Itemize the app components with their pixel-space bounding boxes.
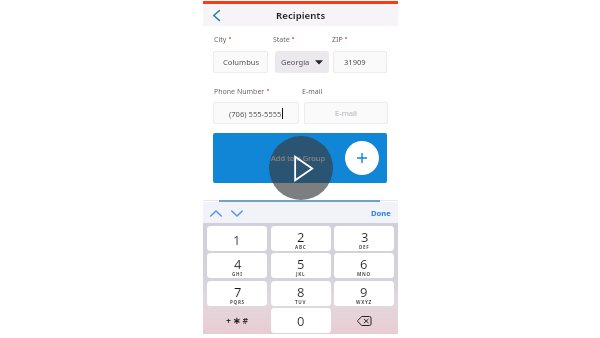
button[interactable]: Done [371, 208, 391, 218]
button[interactable]: 6 [334, 253, 394, 278]
button[interactable]: 31909 [333, 51, 387, 73]
staticText: E-mail [302, 87, 323, 97]
staticText: 0 [297, 312, 305, 330]
staticText: 31909 [344, 57, 366, 67]
button[interactable]: E-mail [304, 102, 388, 124]
staticText: 7 [234, 283, 242, 301]
staticText: Add to a Group [271, 153, 326, 163]
staticText: E-mail [335, 108, 357, 118]
staticText: 8 [297, 283, 305, 301]
staticText: Columbus [223, 57, 260, 67]
staticText: PQRS [230, 299, 245, 305]
button[interactable]: 2 [271, 226, 331, 251]
staticText: JKL [296, 271, 306, 277]
button[interactable]: 5 [271, 253, 331, 278]
staticText: Phone Number [214, 87, 265, 97]
staticText: + ✱ # [226, 315, 249, 327]
staticText: Georgia [281, 57, 310, 67]
button[interactable]: 3 [334, 226, 394, 251]
staticText: 4 [234, 255, 242, 273]
staticText: DEF [359, 244, 370, 250]
staticText: 9 [360, 283, 368, 301]
button[interactable]: + ✱ # [207, 308, 267, 333]
button[interactable]: 7 [207, 281, 267, 306]
staticText: State [273, 35, 290, 45]
staticText: Done [371, 208, 391, 218]
button[interactable]: (706) 555-5555 [213, 102, 299, 124]
button[interactable]: 9 [334, 281, 394, 306]
staticText: ZIP [332, 35, 343, 45]
button[interactable]: 8 [271, 281, 331, 306]
button[interactable]: Add to a Group [213, 133, 387, 183]
staticText: 2 [297, 228, 305, 246]
button[interactable]: Add [345, 141, 379, 175]
button[interactable]: Georgia [275, 51, 329, 73]
button[interactable]: Next field [229, 205, 245, 221]
button[interactable]: 1 [207, 226, 267, 251]
button[interactable]: Play [269, 136, 333, 200]
staticText: ABC [295, 244, 307, 250]
staticText: 6 [360, 255, 368, 273]
button[interactable]: 4 [207, 253, 267, 278]
staticText: MNO [357, 271, 371, 277]
staticText: (706) 555-5555 [229, 109, 282, 119]
staticText: TUV [295, 299, 307, 305]
staticText: Recipients [276, 9, 326, 22]
staticText: 1 [233, 231, 241, 249]
staticText: GHI [232, 271, 243, 277]
button[interactable]: Previous field [208, 205, 224, 221]
staticText: WXYZ [356, 299, 372, 305]
staticText: City [214, 35, 227, 45]
button[interactable]: Columbus [213, 51, 268, 73]
staticText: 3 [361, 228, 369, 246]
button[interactable]: Back [206, 5, 226, 25]
staticText: 5 [297, 255, 305, 273]
button[interactable]: 0 [271, 308, 331, 333]
button[interactable]: Backspace [334, 308, 394, 333]
